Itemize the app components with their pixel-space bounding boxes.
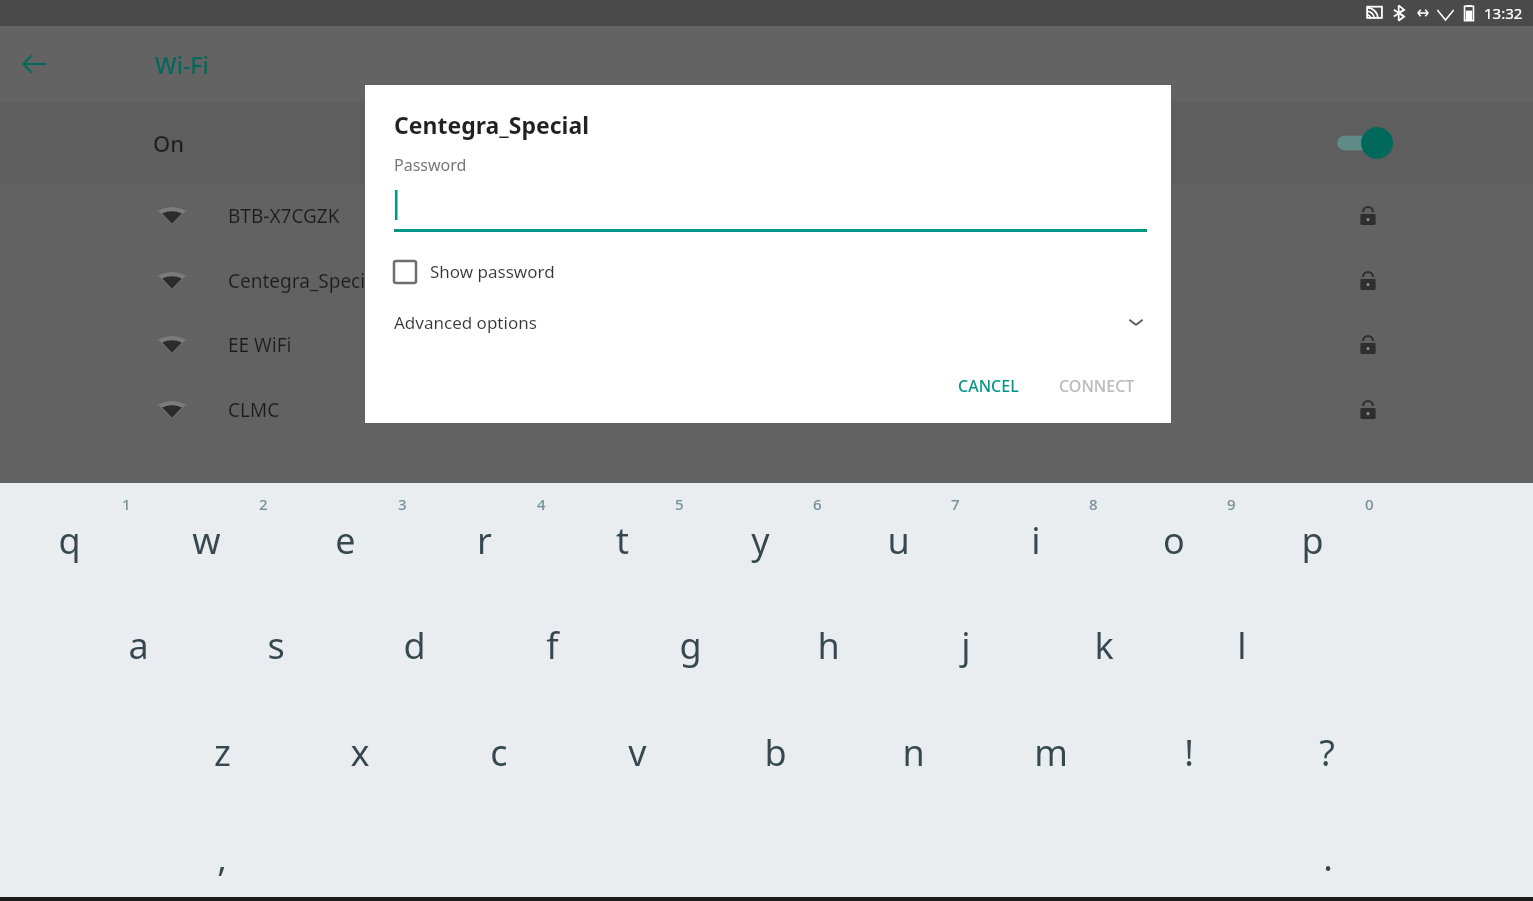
button[interactable]: b xyxy=(706,700,844,804)
staticText: CANCEL xyxy=(958,375,1019,397)
staticText: c xyxy=(490,728,508,777)
button[interactable]: k xyxy=(1035,593,1173,697)
button[interactable]: t xyxy=(553,488,691,592)
button[interactable]: . xyxy=(1259,805,1397,901)
staticText: m xyxy=(1034,728,1068,777)
staticText: p xyxy=(1301,516,1324,565)
staticText: , xyxy=(217,833,227,882)
button[interactable]: z xyxy=(153,700,291,804)
staticText: 5 xyxy=(675,494,684,514)
button[interactable]: CONNECT xyxy=(1047,367,1147,405)
staticText: 1 xyxy=(122,494,131,514)
staticText: u xyxy=(887,516,910,565)
button[interactable]: q xyxy=(0,488,138,592)
button[interactable]: l xyxy=(1173,593,1311,697)
staticText: CLMC xyxy=(228,397,280,423)
button[interactable]: a xyxy=(69,593,207,697)
button[interactable]: BTB-X7CGZK xyxy=(0,184,1533,248)
staticText: s xyxy=(267,621,285,670)
staticText: t xyxy=(616,516,629,565)
staticText: b xyxy=(764,728,787,777)
button[interactable]: s xyxy=(207,593,345,697)
button[interactable]: e xyxy=(276,488,414,592)
button[interactable]: ! xyxy=(1120,700,1258,804)
staticText: ? xyxy=(1319,728,1335,777)
button[interactable]: y xyxy=(691,488,829,592)
button[interactable]: w xyxy=(137,488,275,592)
staticText: y xyxy=(751,516,770,565)
button[interactable]: u xyxy=(829,488,967,592)
staticText: d xyxy=(403,621,426,670)
staticText: EE WiFi xyxy=(228,332,292,358)
staticText: j xyxy=(961,621,971,670)
button[interactable]: i xyxy=(967,488,1105,592)
button[interactable]: Centegra_Special xyxy=(0,249,1533,313)
staticText: w xyxy=(192,516,221,565)
button[interactable]: p xyxy=(1243,488,1381,592)
button[interactable]: v xyxy=(568,700,706,804)
staticText: Centegra_Special xyxy=(394,109,590,140)
staticText: 0 xyxy=(1365,494,1374,514)
button[interactable]: Advanced options xyxy=(394,305,1147,339)
staticText: 6 xyxy=(813,494,822,514)
staticText: On xyxy=(153,128,185,158)
button[interactable]: g xyxy=(621,593,759,697)
staticText: g xyxy=(679,621,702,670)
button[interactable]: Show password xyxy=(394,260,555,283)
staticText: Password xyxy=(394,154,467,176)
staticText: Show password xyxy=(430,260,555,283)
button[interactable]: Back xyxy=(14,44,54,84)
button[interactable]: , xyxy=(153,805,291,901)
button[interactable]: n xyxy=(844,700,982,804)
staticText: a xyxy=(128,621,149,670)
staticText: . xyxy=(1323,833,1333,882)
staticText: x xyxy=(350,728,370,777)
button[interactable]: h xyxy=(759,593,897,697)
staticText: Wi-Fi xyxy=(155,49,209,80)
staticText: q xyxy=(58,516,81,565)
button[interactable]: r xyxy=(415,488,553,592)
button[interactable]: EE WiFi xyxy=(0,313,1533,377)
staticText: 13:32 xyxy=(1484,3,1523,23)
button[interactable]: CLMC xyxy=(0,378,1533,442)
staticText: CONNECT xyxy=(1059,375,1135,397)
staticText: 4 xyxy=(537,494,546,514)
staticText: h xyxy=(817,621,840,670)
staticText: Advanced options xyxy=(394,311,537,334)
button[interactable]: ? xyxy=(1258,700,1396,804)
staticText: 8 xyxy=(1089,494,1098,514)
staticText: v xyxy=(628,728,647,777)
button[interactable]: c xyxy=(430,700,568,804)
staticText: k xyxy=(1094,621,1114,670)
staticText: i xyxy=(1031,516,1041,565)
button[interactable] xyxy=(394,186,1147,232)
staticText: Centegra_Special xyxy=(228,268,381,294)
staticText: 2 xyxy=(259,494,268,514)
staticText: 7 xyxy=(951,494,960,514)
staticText: z xyxy=(214,728,231,777)
button[interactable]: On xyxy=(0,102,1533,184)
button[interactable]: o xyxy=(1105,488,1243,592)
staticText: ! xyxy=(1184,728,1194,777)
staticText: e xyxy=(335,516,356,565)
staticText: 9 xyxy=(1227,494,1236,514)
staticText: f xyxy=(546,621,559,670)
staticText: o xyxy=(1163,516,1185,565)
staticText: BTB-X7CGZK xyxy=(228,203,340,229)
staticText: 3 xyxy=(398,494,407,514)
button[interactable]: f xyxy=(483,593,621,697)
staticText: n xyxy=(902,728,925,777)
staticText: l xyxy=(1237,621,1247,670)
button[interactable]: j xyxy=(897,593,1035,697)
button[interactable]: x xyxy=(291,700,429,804)
button[interactable]: CANCEL xyxy=(946,367,1031,405)
button[interactable]: d xyxy=(345,593,483,697)
button[interactable]: Wi-Fi toggle xyxy=(1337,126,1393,160)
button[interactable]: m xyxy=(982,700,1120,804)
staticText: r xyxy=(477,516,492,565)
